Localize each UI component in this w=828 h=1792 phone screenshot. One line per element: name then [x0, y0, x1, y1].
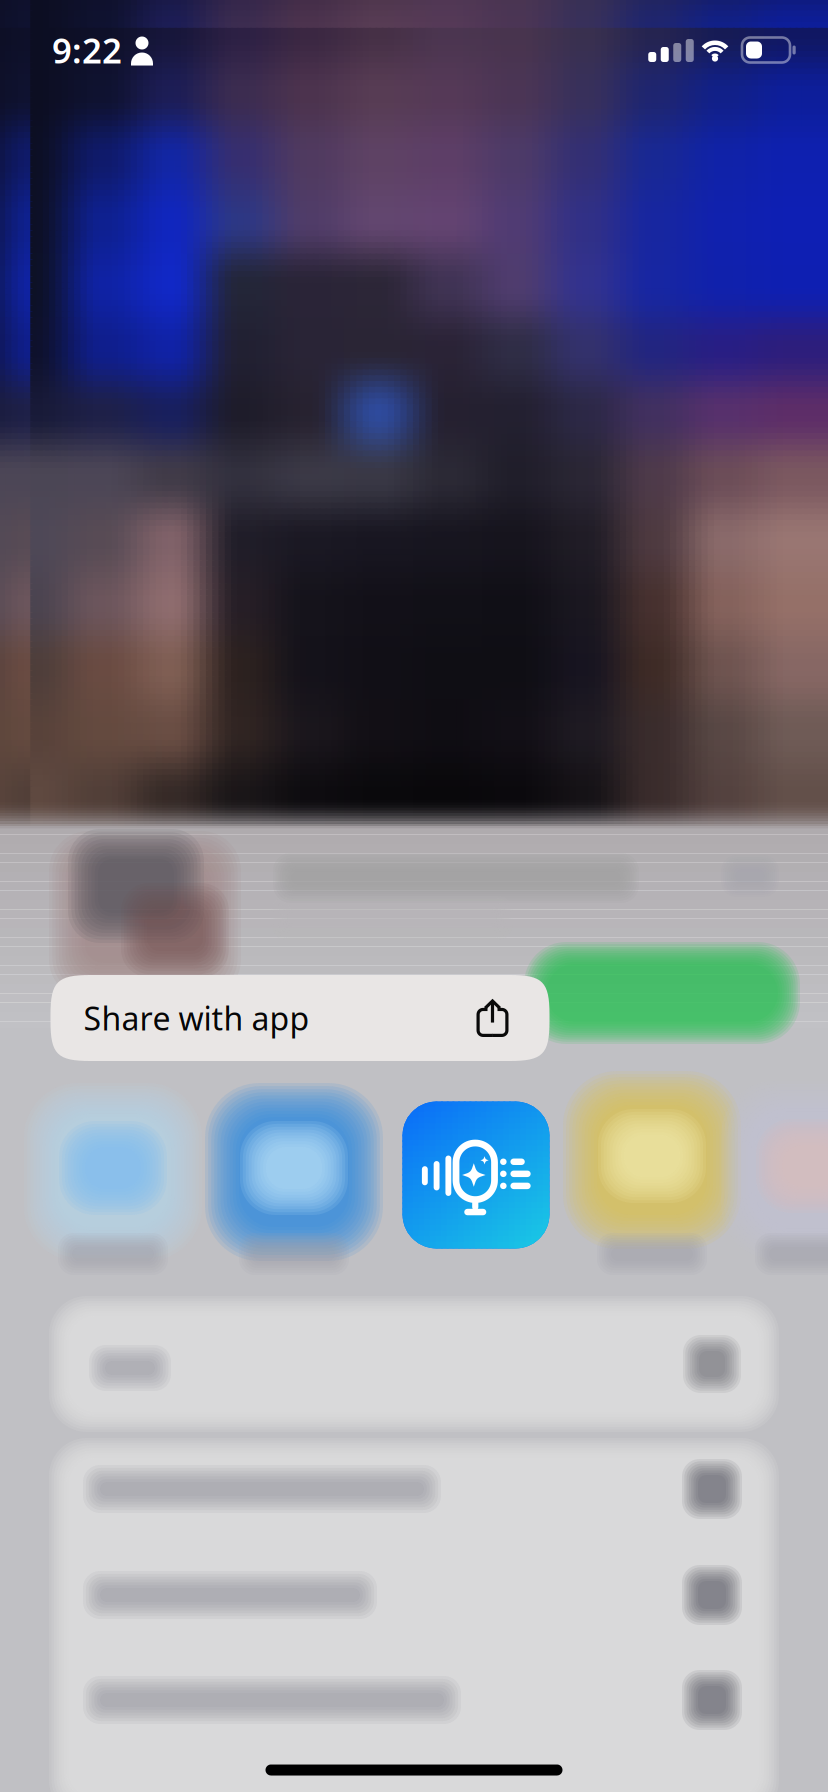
staticText: 9:22 — [52, 27, 122, 73]
staticText: Share with app — [83, 997, 309, 1039]
button[interactable]: Share with app — [50, 975, 549, 1061]
